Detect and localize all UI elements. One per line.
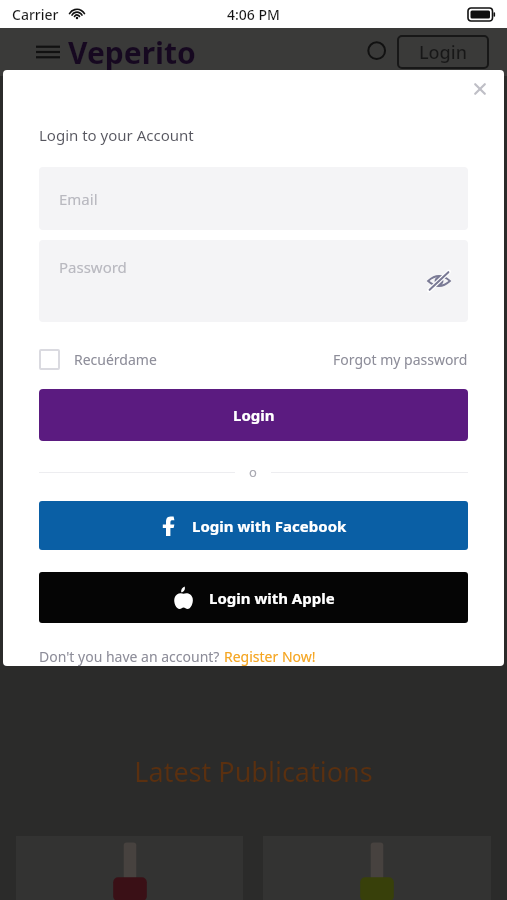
staticText: Recuérdame bbox=[74, 350, 157, 369]
button[interactable]: Close bbox=[470, 79, 490, 99]
staticText: 4:06 PM bbox=[227, 5, 280, 24]
staticText: Login bbox=[233, 405, 275, 425]
button[interactable]: Password bbox=[39, 240, 468, 322]
button[interactable]: Email bbox=[39, 167, 468, 230]
button[interactable]: Menu bbox=[36, 40, 60, 64]
staticText: Latest Publications bbox=[0, 753, 507, 790]
button[interactable]: Recuérdame bbox=[39, 349, 157, 370]
staticText: Don't you have an account? bbox=[39, 647, 224, 666]
staticText: Password bbox=[59, 257, 127, 277]
button[interactable]: Don't you have an account? bbox=[39, 647, 316, 666]
button[interactable]: Login with Facebook bbox=[39, 501, 468, 550]
staticText: Email bbox=[59, 189, 98, 209]
button[interactable]: Login bbox=[397, 35, 489, 69]
button[interactable]: Forgot my password bbox=[333, 350, 468, 369]
staticText: Login with Facebook bbox=[192, 516, 347, 536]
button[interactable]: Login with Apple bbox=[39, 572, 468, 623]
staticText: Login with Apple bbox=[209, 588, 335, 608]
button[interactable] bbox=[16, 836, 243, 900]
staticText: Register Now! bbox=[224, 647, 316, 666]
button[interactable]: Search bbox=[367, 41, 389, 63]
button[interactable]: Login bbox=[39, 389, 468, 441]
button[interactable] bbox=[263, 836, 491, 900]
staticText: Login to your Account bbox=[39, 125, 194, 145]
staticText: Carrier bbox=[12, 5, 59, 24]
staticText: Forgot my password bbox=[333, 350, 468, 369]
staticText: o bbox=[249, 463, 257, 481]
button[interactable]: Show password bbox=[426, 268, 452, 294]
staticText: Veperito bbox=[68, 32, 196, 73]
staticText: Login bbox=[419, 40, 467, 65]
